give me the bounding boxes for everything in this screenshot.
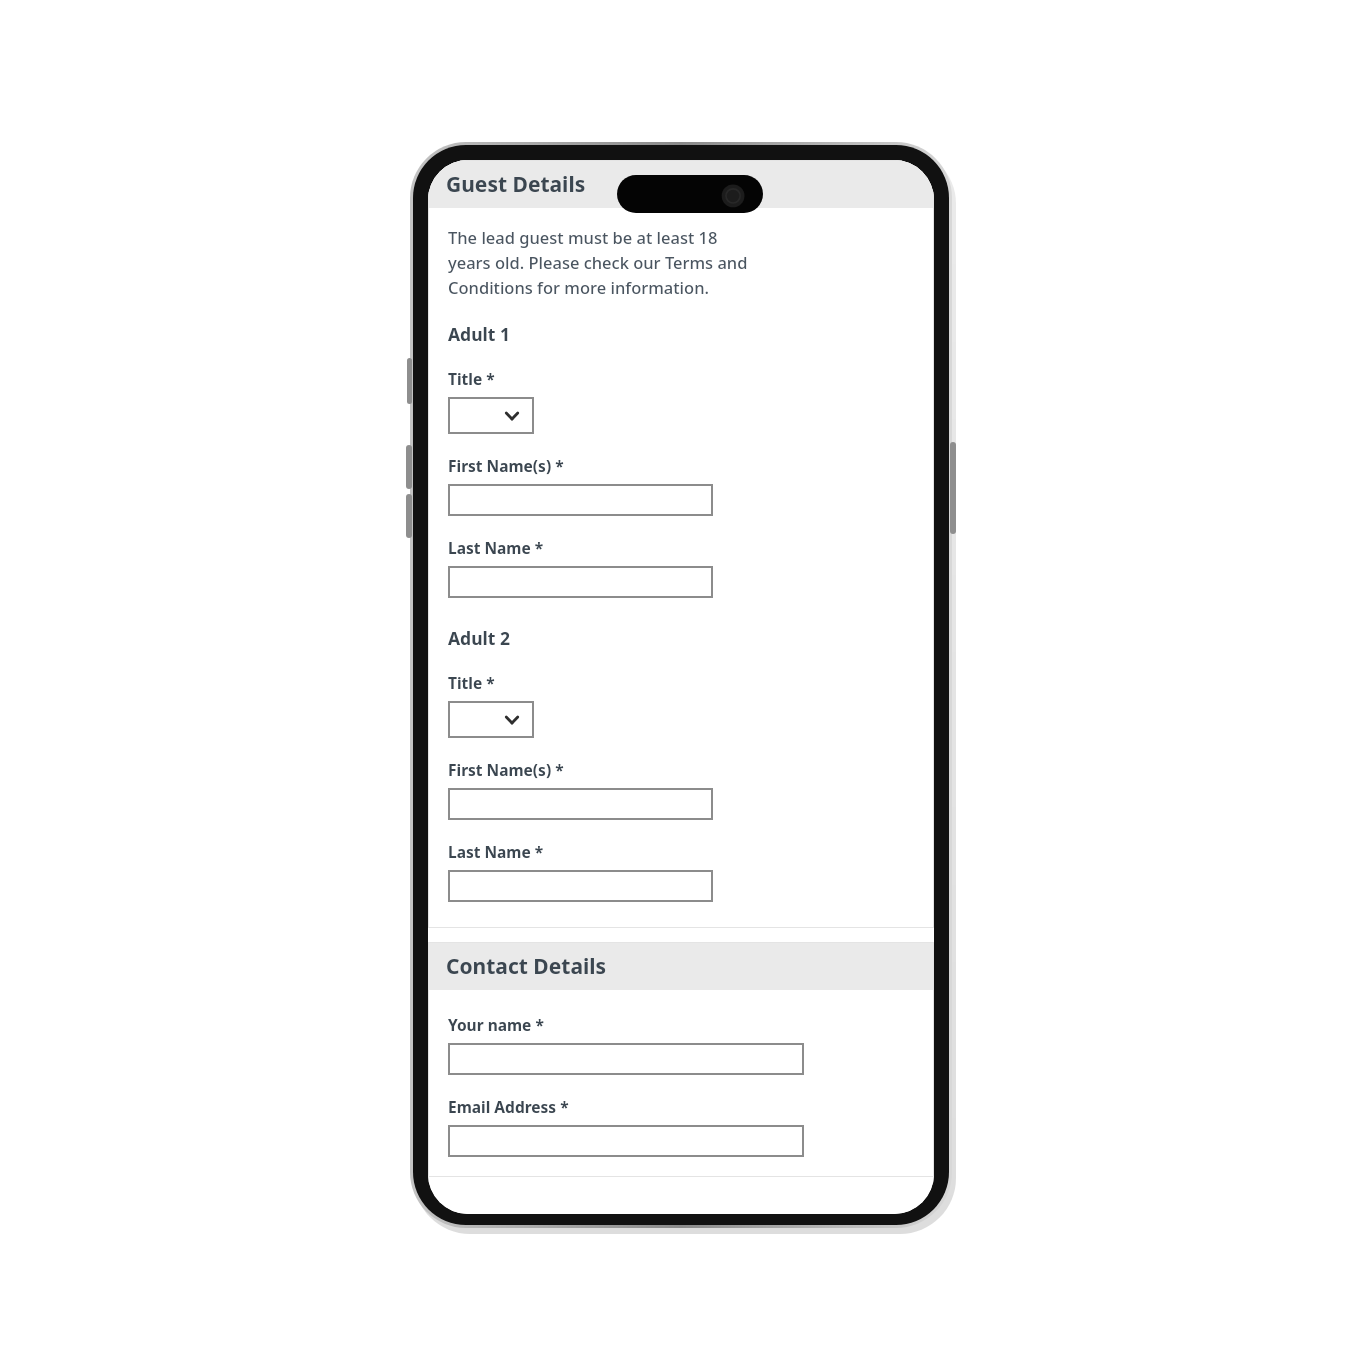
staticText: Email Address * — [448, 1096, 569, 1117]
staticText: Title * — [448, 672, 495, 693]
button[interactable]: Text field — [448, 1043, 804, 1075]
button[interactable]: Text field — [448, 788, 713, 820]
button[interactable]: Text field — [448, 484, 713, 516]
button[interactable]: Title dropdown — [448, 701, 534, 738]
staticText: Guest Details — [446, 170, 586, 199]
staticText: Title * — [448, 368, 495, 389]
staticText: First Name(s) * — [448, 455, 564, 476]
staticText: First Name(s) * — [448, 759, 564, 780]
staticText: Adult 1 — [448, 322, 510, 346]
button[interactable]: Title dropdown — [448, 397, 534, 434]
button[interactable]: Text field — [448, 566, 713, 598]
staticText: Adult 2 — [448, 626, 510, 650]
staticText: Contact Details — [446, 952, 607, 981]
staticText: Your name * — [448, 1014, 544, 1035]
staticText: The lead guest must be at least 18 years… — [448, 226, 748, 298]
button[interactable]: Text field — [448, 870, 713, 902]
staticText: Last Name * — [448, 537, 544, 558]
button[interactable]: Text field — [448, 1125, 804, 1157]
staticText: Last Name * — [448, 841, 544, 862]
